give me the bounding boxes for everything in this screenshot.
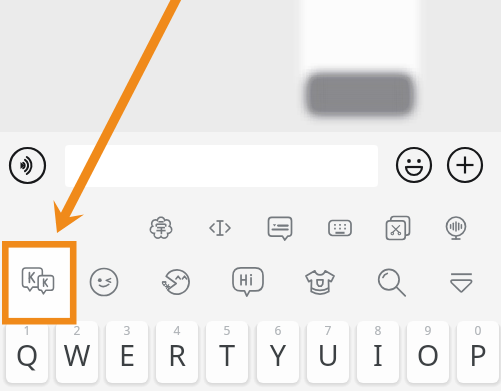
staticText: 4 xyxy=(156,322,198,338)
button[interactable]: 9 xyxy=(407,321,449,383)
button[interactable]: Translate xyxy=(143,210,179,246)
staticText: E xyxy=(106,335,148,374)
button[interactable]: Collapse xyxy=(440,261,482,303)
button[interactable]: 6 xyxy=(257,321,299,383)
button[interactable]: Greeting xyxy=(226,260,270,304)
staticText: T xyxy=(206,335,248,374)
button[interactable]: Voice input xyxy=(8,146,47,185)
button[interactable]: 1 xyxy=(6,321,48,383)
staticText: 7 xyxy=(307,322,349,338)
button[interactable]: Emoticon xyxy=(83,261,125,303)
staticText: I xyxy=(357,335,399,374)
staticText: 1 xyxy=(6,322,48,338)
button[interactable]: Text cursor xyxy=(202,210,238,246)
button[interactable]: 3 xyxy=(106,321,148,383)
button[interactable]: 5 xyxy=(206,321,248,383)
staticText: 6 xyxy=(257,322,299,338)
staticText: P xyxy=(457,335,499,374)
button[interactable]: Add xyxy=(446,146,484,184)
button[interactable]: 4 xyxy=(156,321,198,383)
staticText: O xyxy=(407,335,449,374)
button[interactable]: Search xyxy=(370,261,412,303)
staticText: W xyxy=(56,335,98,374)
button[interactable]: 7 xyxy=(307,321,349,383)
staticText: U xyxy=(307,335,349,374)
button[interactable]: Clothes xyxy=(298,260,342,304)
button[interactable]: Voice xyxy=(438,210,474,246)
staticText: 2 xyxy=(56,322,98,338)
button[interactable] xyxy=(65,145,378,187)
staticText: R xyxy=(156,335,198,374)
staticText: 8 xyxy=(357,322,399,338)
button[interactable]: Face sticker xyxy=(153,260,197,304)
button[interactable]: Keyboard xyxy=(322,210,358,246)
button[interactable]: Kika stickers xyxy=(16,260,60,304)
staticText: Q xyxy=(6,335,48,374)
button[interactable]: 0 xyxy=(457,321,499,383)
button[interactable]: 2 xyxy=(56,321,98,383)
button[interactable]: Emoji xyxy=(395,146,433,184)
staticText: 9 xyxy=(407,322,449,338)
button[interactable]: Quick phrases xyxy=(262,210,298,246)
staticText: 3 xyxy=(106,322,148,338)
button[interactable]: 8 xyxy=(357,321,399,383)
staticText: 5 xyxy=(206,322,248,338)
staticText: Y xyxy=(257,335,299,374)
staticText: 0 xyxy=(457,322,499,338)
button[interactable]: Clipboard xyxy=(380,210,416,246)
